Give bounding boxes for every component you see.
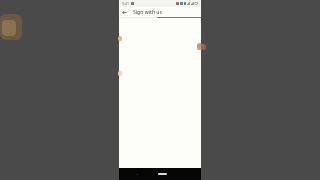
staticText: Sign with us: [133, 9, 162, 16]
button[interactable]: Back: [119, 7, 130, 18]
staticText: 9:41: [122, 1, 129, 6]
button[interactable]: Home: [158, 173, 167, 175]
